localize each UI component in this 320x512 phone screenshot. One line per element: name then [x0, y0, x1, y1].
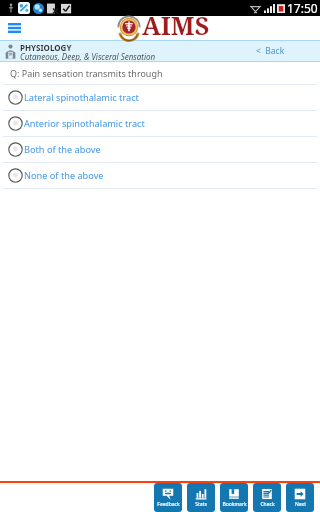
- button[interactable]: Both of the above: [0, 137, 320, 162]
- staticText: 17:50: [287, 0, 318, 16]
- button[interactable]: Stats: [187, 483, 215, 512]
- staticText: AIMS: [142, 8, 210, 42]
- button[interactable]: < Back: [256, 41, 285, 61]
- staticText: < Back: [256, 45, 285, 57]
- staticText: None of the above: [24, 169, 104, 182]
- staticText: Anterior spinothalamic tract: [24, 117, 145, 130]
- button[interactable]: Check: [253, 483, 281, 512]
- button[interactable]: Bookmark: [220, 483, 248, 512]
- staticText: Next: [295, 501, 306, 508]
- staticText: Check: [260, 501, 275, 508]
- staticText: Stats: [195, 501, 207, 508]
- staticText: Feedback: [157, 501, 180, 508]
- button[interactable]: Next: [286, 483, 314, 512]
- button[interactable]: None of the above: [0, 163, 320, 188]
- staticText: Cutaneous, Deep, & Visceral Sensation: [20, 51, 156, 62]
- button[interactable]: Lateral spinothalamic tract: [0, 85, 320, 110]
- staticText: PHYSIOLOGY: [20, 42, 72, 53]
- staticText: Bookmark: [222, 501, 247, 508]
- button[interactable]: Menu: [3, 17, 25, 39]
- staticText: Both of the above: [24, 143, 101, 156]
- button[interactable]: Anterior spinothalamic tract: [0, 111, 320, 136]
- staticText: Lateral spinothalamic tract: [24, 91, 139, 104]
- button[interactable]: Feedback: [154, 483, 182, 512]
- staticText: Q: Pain sensation transmits through: [10, 67, 163, 79]
